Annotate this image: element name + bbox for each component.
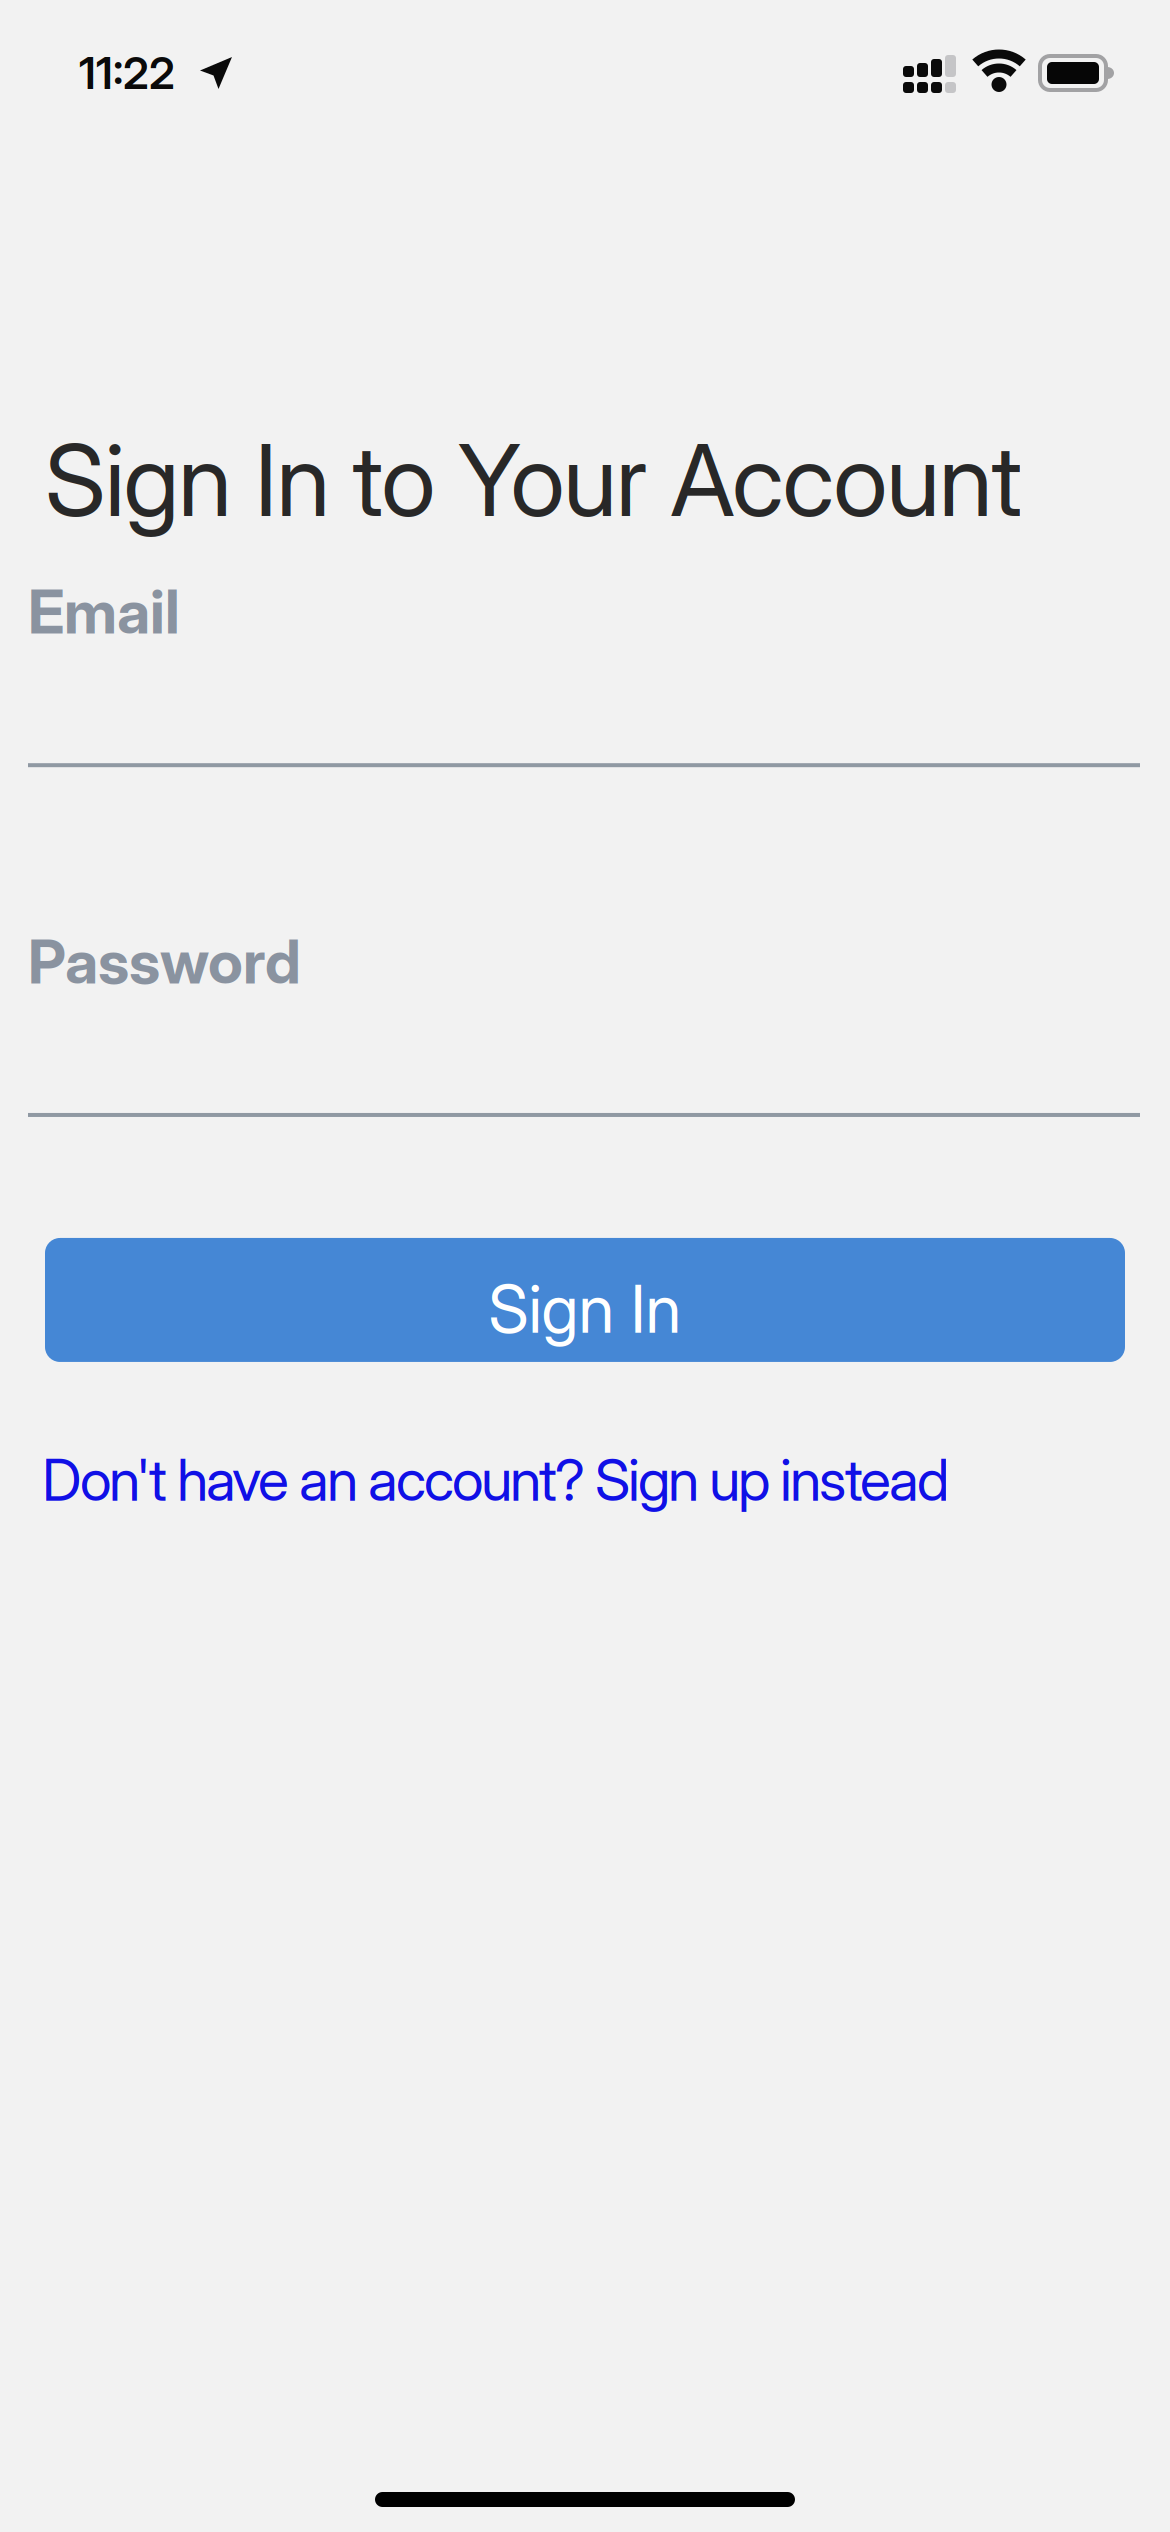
button[interactable]: Don't have an account? Sign up instead [42, 1446, 949, 1514]
staticText: Sign In to Your Account [45, 422, 1022, 538]
staticText: Sign In [488, 1270, 681, 1347]
staticText: Don't have an account? Sign up instead [42, 1446, 949, 1514]
staticText: Email [28, 576, 180, 647]
staticText: 11:22 [79, 47, 175, 99]
staticText: Password [28, 926, 301, 997]
button[interactable]: Sign In [45, 1238, 1125, 1362]
